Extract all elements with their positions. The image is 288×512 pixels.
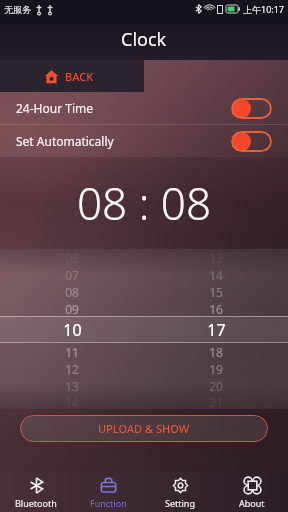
staticText: 09	[65, 301, 79, 317]
staticText: 21	[209, 394, 223, 409]
button[interactable]: Bluetooth	[0, 472, 72, 512]
button[interactable]: Set Automatically	[231, 131, 272, 152]
staticText: 11	[65, 344, 79, 360]
staticText: 无服务	[4, 4, 31, 15]
staticText: 06	[65, 250, 79, 266]
button[interactable]: Set Automatically	[0, 125, 288, 157]
staticText: Clock	[121, 27, 167, 52]
staticText: Bluetooth	[15, 497, 57, 509]
button[interactable]: 06	[0, 249, 144, 409]
staticText: BACK	[65, 69, 94, 84]
button[interactable]: 24-Hour Time	[0, 92, 288, 124]
button[interactable]: About	[216, 472, 288, 512]
staticText: 14	[65, 394, 79, 409]
staticText: Setting	[165, 497, 195, 509]
staticText: 15	[209, 284, 223, 300]
staticText: 16	[209, 301, 223, 317]
staticText: 08	[65, 284, 79, 300]
staticText: 13	[209, 250, 223, 266]
staticText: 12	[65, 361, 79, 377]
staticText: 14	[209, 267, 223, 283]
button[interactable]: 24-Hour Time	[231, 98, 272, 119]
staticText: About	[239, 497, 265, 509]
staticText: 13	[65, 378, 79, 394]
staticText: 07	[65, 267, 79, 283]
staticText: 24-Hour Time	[16, 100, 93, 116]
staticText: 08 : 08	[77, 173, 212, 233]
staticText: 18	[209, 344, 223, 360]
staticText: Function	[90, 497, 127, 509]
button[interactable]: BACK	[0, 60, 144, 92]
staticText: 17	[207, 319, 226, 341]
button[interactable]: UPLOAD & SHOW	[20, 415, 268, 442]
staticText: 20	[209, 378, 223, 394]
staticText: 上午10:17	[243, 3, 285, 15]
button[interactable]: Setting	[144, 472, 216, 512]
button[interactable]: Function	[72, 472, 144, 512]
staticText: UPLOAD & SHOW	[98, 421, 190, 436]
staticText: Set Automatically	[16, 133, 114, 149]
staticText: 10	[63, 319, 82, 341]
button[interactable]: 13	[144, 249, 288, 409]
staticText: 19	[209, 361, 223, 377]
